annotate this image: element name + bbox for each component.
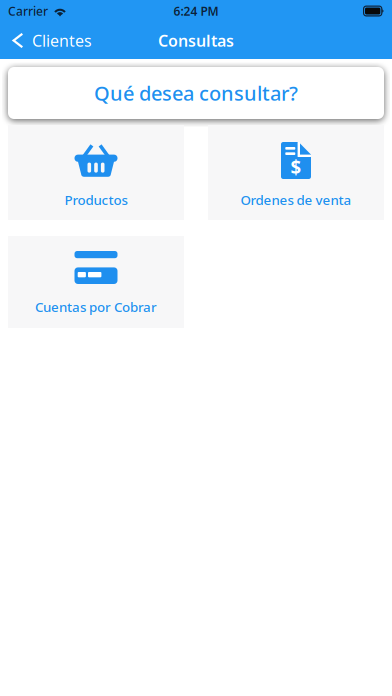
staticText: Consultas (158, 30, 234, 51)
button[interactable]: Cuentas por Cobrar (8, 236, 184, 328)
button[interactable]: $ (208, 125, 384, 220)
staticText: 6:24 PM (173, 3, 218, 19)
staticText: Carrier (8, 3, 48, 19)
staticText: $ (290, 155, 301, 179)
staticText: Clientes (32, 30, 92, 51)
button[interactable]: Productos (8, 125, 184, 220)
staticText: Qué desea consultar? (94, 80, 298, 106)
staticText: Ordenes de venta (240, 191, 351, 209)
staticText: Cuentas por Cobrar (35, 298, 157, 316)
staticText: Productos (64, 191, 127, 209)
button[interactable]: Clientes (0, 22, 102, 59)
